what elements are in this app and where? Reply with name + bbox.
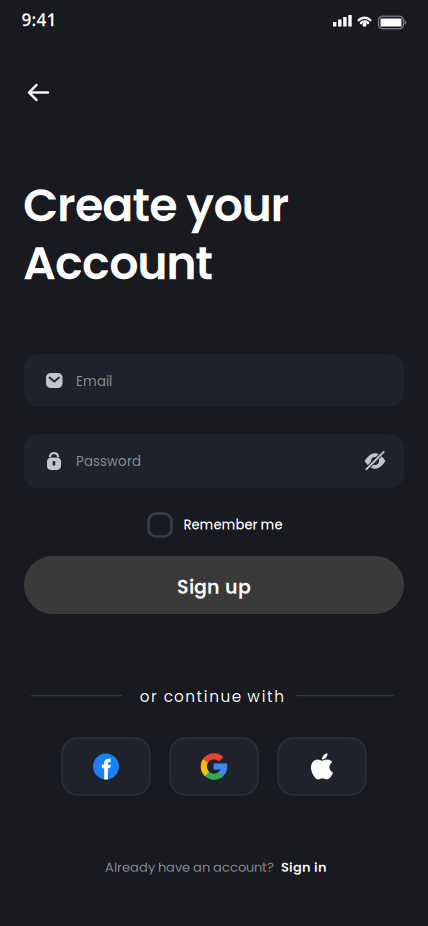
- staticText: Email: [76, 372, 112, 391]
- staticText: or continue with: [140, 686, 284, 707]
- button[interactable]: Sign in: [281, 858, 327, 876]
- staticText: Create your: [23, 173, 289, 237]
- staticText: Remember me: [183, 516, 282, 534]
- button[interactable]: Continue with Facebook: [62, 738, 150, 795]
- button[interactable]: Show password: [353, 439, 397, 483]
- staticText: Account: [23, 231, 213, 295]
- staticText: Already have an account?: [105, 858, 274, 876]
- button[interactable]: Sign up: [24, 556, 404, 614]
- staticText: Password: [76, 452, 141, 471]
- button[interactable]: Continue with Apple: [278, 738, 366, 795]
- button[interactable]: Continue with Google: [170, 738, 258, 795]
- staticText: 9:41: [21, 8, 56, 31]
- staticText: Sign in: [281, 858, 327, 876]
- button[interactable]: Back: [16, 70, 60, 114]
- staticText: Sign up: [177, 574, 251, 600]
- button[interactable]: Remember me: [148, 513, 282, 536]
